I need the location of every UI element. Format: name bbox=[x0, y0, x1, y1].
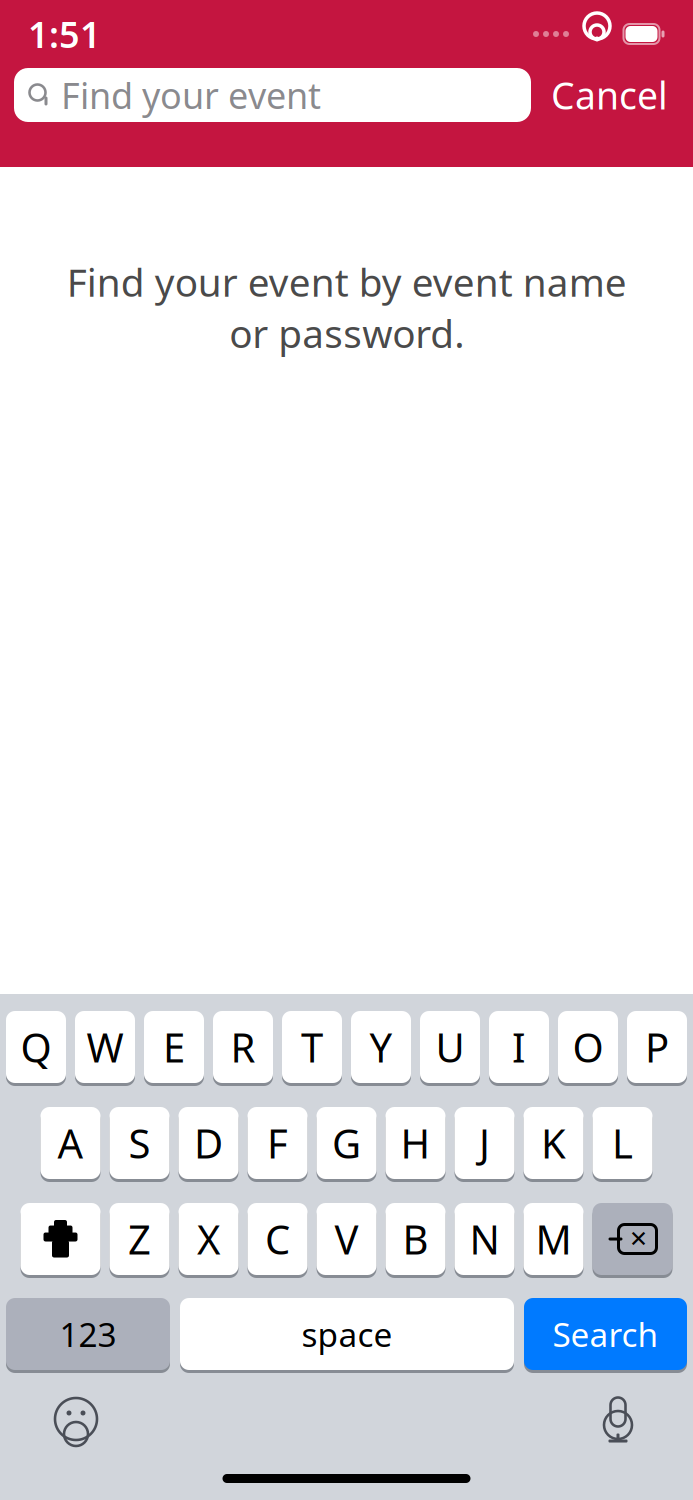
staticText: Search bbox=[552, 1312, 658, 1356]
staticText: O bbox=[572, 1020, 603, 1073]
button[interactable]: J bbox=[454, 1107, 514, 1182]
button[interactable]: N bbox=[454, 1203, 514, 1278]
staticText: W bbox=[86, 1020, 123, 1073]
button[interactable]: W bbox=[75, 1011, 135, 1086]
staticText: Cancel bbox=[551, 70, 668, 120]
staticText: Find your event by event name or passwor… bbox=[66, 256, 626, 359]
staticText: G bbox=[332, 1116, 361, 1169]
staticText: B bbox=[402, 1212, 428, 1265]
button[interactable]: Dictation bbox=[583, 1387, 693, 1451]
staticText: U bbox=[435, 1020, 464, 1073]
staticText: A bbox=[57, 1116, 83, 1169]
staticText: V bbox=[334, 1212, 358, 1265]
staticText: H bbox=[400, 1116, 430, 1169]
staticText: Z bbox=[128, 1212, 151, 1265]
staticText: R bbox=[230, 1020, 255, 1073]
button[interactable]: F bbox=[247, 1107, 307, 1182]
button[interactable]: G bbox=[316, 1107, 376, 1182]
staticText: D bbox=[194, 1116, 223, 1169]
button[interactable]: Delete bbox=[592, 1203, 672, 1278]
button[interactable]: Q bbox=[6, 1011, 66, 1086]
button[interactable]: O bbox=[558, 1011, 618, 1086]
staticText: E bbox=[163, 1020, 185, 1073]
button[interactable]: R bbox=[213, 1011, 273, 1086]
button[interactable]: D bbox=[178, 1107, 238, 1182]
button[interactable]: U bbox=[420, 1011, 480, 1086]
button[interactable]: Search bbox=[524, 1298, 687, 1373]
staticText: N bbox=[469, 1212, 499, 1265]
button[interactable]: S bbox=[109, 1107, 169, 1182]
staticText: X bbox=[197, 1212, 220, 1265]
button[interactable]: K bbox=[523, 1107, 583, 1182]
staticText: 1:51 bbox=[28, 10, 101, 58]
button[interactable]: 123 bbox=[6, 1298, 170, 1373]
button[interactable]: A bbox=[40, 1107, 100, 1182]
staticText: J bbox=[479, 1116, 490, 1169]
button[interactable]: Z bbox=[109, 1203, 169, 1278]
button[interactable]: Emoji bbox=[0, 1387, 110, 1451]
button[interactable]: B bbox=[385, 1203, 445, 1278]
staticText: Q bbox=[20, 1020, 51, 1073]
staticText: Find your event bbox=[61, 71, 321, 119]
button[interactable]: L bbox=[592, 1107, 652, 1182]
staticText: K bbox=[541, 1116, 566, 1169]
staticText: Y bbox=[369, 1020, 392, 1073]
button[interactable]: H bbox=[385, 1107, 445, 1182]
button[interactable]: X bbox=[178, 1203, 238, 1278]
staticText: I bbox=[512, 1020, 526, 1073]
staticText: ✕ bbox=[629, 1226, 648, 1252]
button[interactable]: I bbox=[489, 1011, 549, 1086]
button[interactable]: E bbox=[144, 1011, 204, 1086]
button[interactable]: V bbox=[316, 1203, 376, 1278]
staticText: T bbox=[301, 1020, 323, 1073]
button[interactable]: Shift bbox=[20, 1203, 100, 1278]
button[interactable]: P bbox=[627, 1011, 687, 1086]
staticText: S bbox=[128, 1116, 150, 1169]
button[interactable]: M bbox=[523, 1203, 583, 1278]
staticText: L bbox=[612, 1116, 633, 1169]
staticText: F bbox=[267, 1116, 288, 1169]
button[interactable]: space bbox=[180, 1298, 514, 1373]
button[interactable]: Y bbox=[351, 1011, 411, 1086]
staticText: C bbox=[265, 1212, 290, 1265]
staticText: P bbox=[645, 1020, 669, 1073]
button[interactable]: Cancel bbox=[539, 68, 680, 122]
button[interactable]: T bbox=[282, 1011, 342, 1086]
button[interactable]: Find your event bbox=[14, 68, 531, 122]
staticText: space bbox=[301, 1312, 392, 1356]
staticText: M bbox=[535, 1212, 571, 1265]
staticText: 123 bbox=[59, 1312, 116, 1356]
button[interactable]: C bbox=[247, 1203, 307, 1278]
